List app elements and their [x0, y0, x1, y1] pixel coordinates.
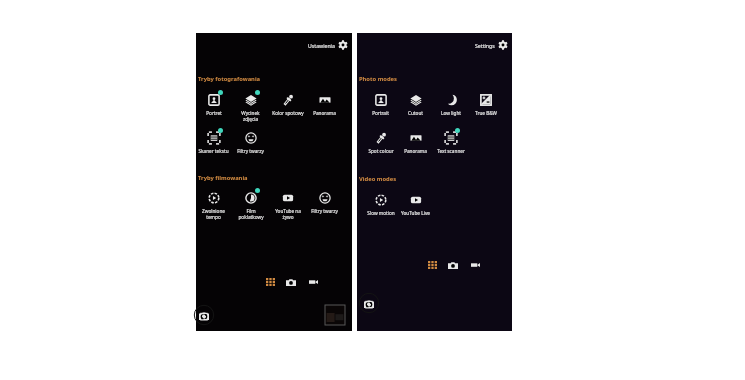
button[interactable]: Photo [446, 258, 460, 272]
button[interactable]: Video [468, 258, 482, 272]
staticText: Kolor spotowy [272, 110, 304, 116]
button[interactable]: YouTube Live [398, 193, 433, 216]
button[interactable]: Slow motion [363, 193, 398, 216]
button[interactable]: True B&W [468, 93, 503, 116]
staticText: Cutout [408, 110, 423, 116]
button[interactable]: Video [306, 275, 320, 289]
button[interactable]: Switch camera [358, 292, 380, 314]
button[interactable]: Panorama [398, 131, 433, 154]
staticText: Wycinek zdjęcia [241, 110, 260, 122]
staticText: Filtry twarzy [237, 148, 264, 154]
button[interactable]: Portrait [363, 93, 398, 116]
button[interactable]: Switch camera [193, 304, 215, 326]
button[interactable]: Portret [195, 93, 232, 116]
staticText: Text scanner [437, 148, 465, 154]
staticText: Slow motion [367, 210, 395, 216]
staticText: YouTube na żywo [275, 208, 301, 220]
button[interactable]: Spot colour [363, 131, 398, 154]
staticText: Tryby fotografowania [198, 75, 261, 83]
staticText: Portret [206, 110, 222, 116]
staticText: Zwolnione tempo [202, 208, 225, 220]
staticText: Panorama [404, 148, 427, 154]
button[interactable]: Skaner tekstu [195, 131, 232, 154]
button[interactable]: Filtry twarzy [306, 191, 343, 214]
staticText: YouTube Live [401, 210, 430, 216]
staticText: Settings [475, 42, 495, 49]
button[interactable]: Film poklatkowy [232, 191, 269, 220]
button[interactable]: All modes [425, 258, 439, 272]
staticText: Filtry twarzy [311, 208, 338, 214]
button[interactable]: Last photo [325, 305, 345, 325]
button[interactable]: Text scanner [433, 131, 468, 154]
staticText: Video modes [359, 175, 397, 183]
staticText: Portrait [372, 110, 389, 116]
staticText: Tryby filmowania [198, 174, 248, 182]
staticText: Low light [441, 110, 461, 116]
staticText: Film poklatkowy [238, 208, 264, 220]
staticText: Skaner tekstu [198, 148, 229, 154]
button[interactable]: Filtry twarzy [232, 131, 269, 154]
other: Settings [498, 40, 508, 50]
button[interactable]: Panorama [306, 93, 343, 116]
button[interactable]: YouTube na żywo [269, 191, 306, 220]
staticText: True B&W [475, 110, 497, 116]
staticText: Panorama [313, 110, 336, 116]
staticText: Spot colour [368, 148, 394, 154]
staticText: Ustawienia [308, 42, 335, 49]
button[interactable]: Zwolnione tempo [195, 191, 232, 220]
button[interactable]: Photo [284, 275, 298, 289]
button[interactable]: Wycinek zdjęcia [232, 93, 269, 122]
other: Settings [338, 40, 348, 50]
button[interactable]: Kolor spotowy [269, 93, 306, 116]
button[interactable]: Ustawienia [306, 38, 350, 52]
staticText: Photo modes [359, 75, 397, 83]
button[interactable]: All modes [263, 275, 277, 289]
button[interactable]: Cutout [398, 93, 433, 116]
button[interactable]: Low light [433, 93, 468, 116]
button[interactable]: Settings [473, 38, 510, 52]
